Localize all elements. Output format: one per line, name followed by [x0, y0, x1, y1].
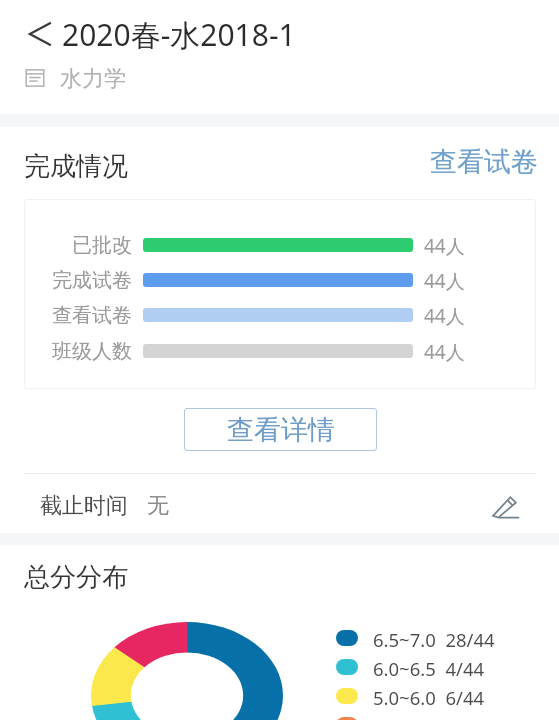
staticText: 查看详情 — [227, 413, 335, 447]
staticText: 总分分布 — [24, 561, 128, 594]
staticText: 截止时间 — [40, 492, 128, 520]
button[interactable]: 查看试卷 — [424, 140, 544, 184]
staticText: 完成情况 — [24, 150, 128, 183]
staticText: 无 — [147, 492, 169, 520]
staticText: 班级人数 — [52, 339, 132, 364]
staticText: 查看试卷 — [430, 145, 538, 179]
staticText: 水力学 — [60, 65, 126, 93]
staticText: 查看试卷 — [52, 303, 132, 328]
button[interactable]: Back — [17, 10, 65, 58]
button[interactable]: 查看详情 — [184, 408, 377, 451]
staticText: 完成试卷 — [52, 268, 132, 293]
staticText: 44人 — [424, 339, 465, 365]
staticText: 6.0~6.5 4/44 — [373, 656, 485, 681]
staticText: 已批改 — [72, 233, 132, 258]
staticText: 44人 — [424, 303, 465, 329]
staticText: 5.0~6.0 6/44 — [373, 685, 485, 710]
staticText: 6.5~7.0 28/44 — [373, 627, 495, 652]
button[interactable]: Edit — [482, 482, 528, 528]
staticText: 44人 — [424, 233, 465, 259]
staticText: 44人 — [424, 268, 465, 294]
staticText: 2020春-水2018-1 — [62, 14, 296, 55]
